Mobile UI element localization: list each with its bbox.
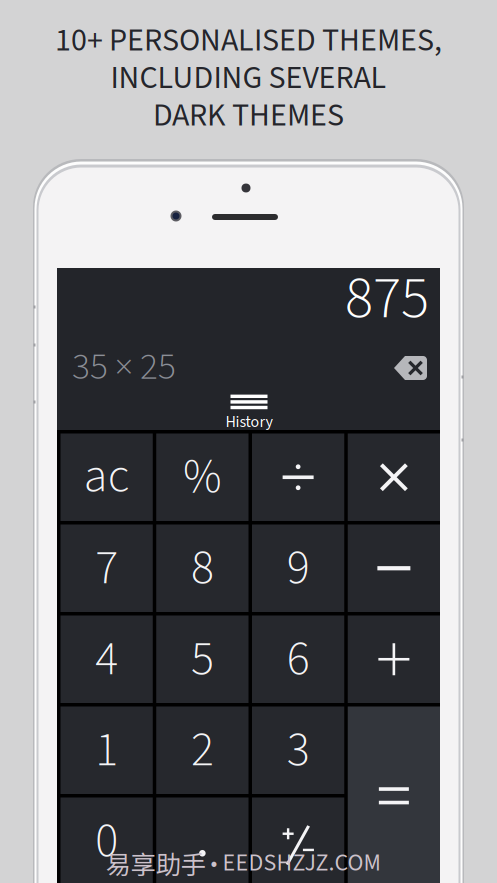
staticText: %: [183, 443, 222, 511]
staticText: ac: [84, 442, 130, 510]
button[interactable]: Divide: [252, 433, 344, 521]
button[interactable]: History: [214, 398, 284, 430]
button[interactable]: 7: [60, 524, 153, 612]
staticText: 1: [95, 716, 118, 784]
staticText: 2: [191, 716, 214, 784]
staticText: 6: [287, 625, 310, 693]
button[interactable]: Equals: [348, 706, 440, 883]
button[interactable]: 9: [252, 524, 344, 612]
button[interactable]: Delete: [394, 354, 428, 382]
button[interactable]: 0: [60, 797, 153, 883]
staticText: 易享助手: [105, 845, 205, 881]
staticText: 9: [287, 534, 310, 602]
button[interactable]: 3: [252, 706, 344, 794]
button[interactable]: 8: [156, 524, 248, 612]
staticText: EEDSHZJZ.COM: [222, 846, 380, 880]
button[interactable]: Decimal point: [156, 797, 248, 883]
staticText: 3: [287, 716, 310, 784]
button[interactable]: Minus: [348, 524, 440, 612]
button[interactable]: Multiply: [348, 433, 440, 521]
staticText: 10+ PERSONALISED THEMES,: [55, 18, 442, 63]
button[interactable]: %: [156, 433, 248, 521]
staticText: 875: [345, 257, 429, 341]
button[interactable]: Plus minus: [252, 797, 344, 883]
button[interactable]: 5: [156, 615, 248, 703]
button[interactable]: 4: [60, 615, 153, 703]
staticText: INCLUDING SEVERAL: [110, 55, 386, 101]
staticText: 8: [191, 534, 214, 602]
staticText: DARK THEMES: [153, 93, 344, 138]
button[interactable]: 2: [156, 706, 248, 794]
staticText: •: [210, 847, 217, 879]
button[interactable]: ac: [60, 433, 153, 521]
staticText: 4: [95, 625, 118, 693]
staticText: 35 × 25: [72, 340, 176, 394]
button[interactable]: Plus: [348, 615, 440, 703]
staticText: History: [225, 411, 272, 433]
staticText: 0: [95, 807, 118, 875]
staticText: 7: [95, 534, 118, 602]
button[interactable]: 6: [252, 615, 344, 703]
button[interactable]: 1: [60, 706, 153, 794]
staticText: 5: [191, 625, 214, 693]
